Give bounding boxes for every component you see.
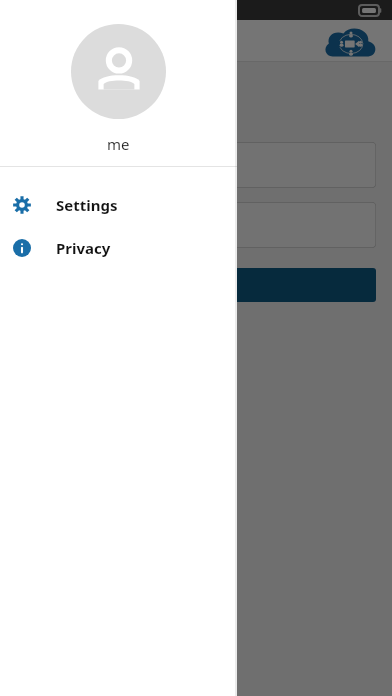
button[interactable] — [0, 0, 392, 696]
button[interactable]: Settings — [0, 183, 237, 226]
button[interactable]: Profile picture — [71, 24, 166, 119]
button[interactable]: Join — [16, 268, 376, 302]
staticText: Video — [52, 30, 95, 52]
staticText: me — [107, 134, 130, 154]
button[interactable]: Cloud video service logo — [324, 24, 378, 59]
button[interactable]: Your name or email — [16, 202, 376, 248]
button[interactable]: Conference ID — [16, 142, 376, 188]
button[interactable]: Privacy — [0, 226, 237, 269]
staticText: Conference ID — [30, 155, 131, 175]
staticText: Settings — [56, 195, 118, 215]
staticText: Join a conference — [16, 90, 170, 116]
staticText: Privacy — [56, 238, 111, 258]
